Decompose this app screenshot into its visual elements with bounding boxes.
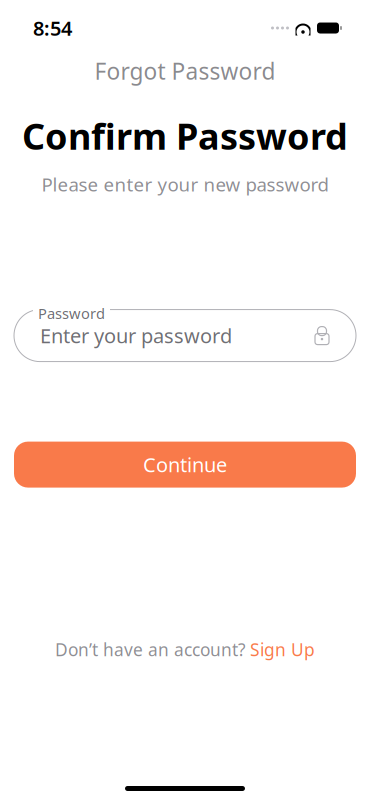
staticText: Confirm Password bbox=[22, 112, 348, 160]
staticText: Continue bbox=[143, 451, 227, 478]
staticText: Enter your password bbox=[40, 322, 232, 349]
staticText: Please enter your new password bbox=[41, 172, 328, 197]
staticText: Forgot Password bbox=[94, 56, 275, 86]
staticText: Password bbox=[38, 304, 105, 323]
staticText: Sign Up bbox=[250, 638, 315, 661]
staticText: 8:54 bbox=[33, 15, 72, 41]
button[interactable]: Continue bbox=[14, 442, 356, 488]
staticText: Don’t have an account? bbox=[55, 638, 246, 661]
button[interactable]: Don’t have an account? bbox=[47, 632, 323, 667]
